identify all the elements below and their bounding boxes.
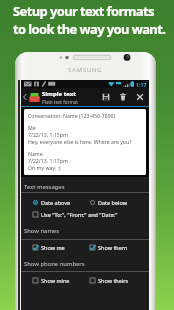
staticText: Use "To:", "From:" and "Date:" (41, 211, 118, 218)
staticText: 7/22/13, 1:17pm (28, 157, 68, 164)
button[interactable]: Delete (114, 88, 131, 106)
staticText: Me (28, 124, 36, 131)
button[interactable]: Save (97, 88, 114, 106)
staticText: Show phone numbers (24, 260, 85, 268)
button[interactable]: Navigate up (21, 88, 29, 106)
staticText: 1:17 (136, 81, 147, 88)
staticText: Text messages (24, 183, 65, 191)
staticText: Simple text (42, 90, 76, 98)
staticText: Show me (41, 244, 65, 251)
staticText: to look the way you want. (13, 20, 166, 38)
staticText: Hey, everyone else is here. Where are yo… (28, 138, 132, 145)
staticText: On my way. :) (28, 164, 61, 171)
button[interactable]: Date below (90, 197, 147, 207)
staticText: Show them (98, 244, 128, 251)
staticText: Show mine (41, 277, 70, 284)
staticText: SAMSUNG (68, 66, 103, 74)
staticText: Setup your text formats (13, 2, 154, 20)
staticText: Show theirs (98, 277, 129, 284)
staticText: Name (28, 150, 43, 157)
staticText: Plain text format (42, 99, 78, 105)
button[interactable]: Close (131, 88, 149, 106)
staticText: Date above (41, 199, 71, 206)
button[interactable]: Show me (33, 242, 90, 252)
staticText: 7/22/13, 1:15pm (28, 131, 68, 138)
button[interactable]: Show theirs (90, 275, 147, 285)
button[interactable]: Date above (33, 197, 90, 207)
staticText: Show names (24, 227, 60, 235)
staticText: Date below (98, 199, 128, 206)
button[interactable]: Use "To:", "From:" and "Date:" (33, 209, 147, 219)
button[interactable]: Show mine (33, 275, 90, 285)
staticText: Conversation: Name (123-456-7890) (28, 112, 116, 119)
button[interactable]: Show them (90, 242, 147, 252)
